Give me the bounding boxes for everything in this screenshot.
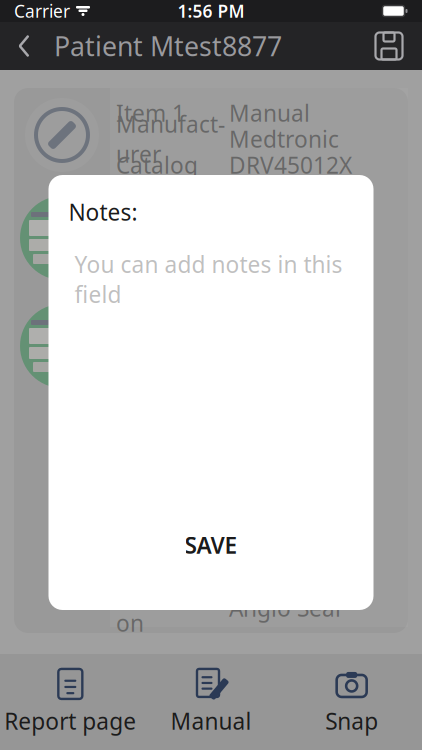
- button[interactable]: Snap: [281, 658, 422, 746]
- staticText: Manual: [229, 98, 310, 128]
- staticText: You can add notes in this field: [74, 249, 342, 309]
- button[interactable]: Save: [360, 23, 418, 69]
- staticText: Manual: [170, 706, 251, 736]
- button[interactable]: SAVE: [48, 518, 373, 572]
- staticText: Carrier: [14, 0, 70, 22]
- button[interactable]: Report page: [0, 658, 141, 746]
- staticText: Notes:: [68, 197, 137, 227]
- staticText: Snap: [325, 706, 378, 736]
- staticText: SAVE: [184, 530, 237, 560]
- staticText: Item 1: [116, 98, 185, 128]
- staticText: Medtronic: [229, 124, 339, 154]
- staticText: Catalog: [116, 150, 198, 180]
- staticText: Report page: [4, 706, 136, 736]
- staticText: Manufacturer: [116, 109, 225, 169]
- button[interactable]: Manual: [141, 658, 281, 746]
- staticText: Angio Seal: [229, 593, 341, 623]
- staticText: Description: [116, 578, 218, 638]
- button[interactable]: Back: [4, 22, 44, 70]
- staticText: Patient Mtest8877: [54, 28, 282, 64]
- staticText: DRV45012X: [229, 150, 352, 180]
- staticText: 1:56 PM: [177, 0, 244, 22]
